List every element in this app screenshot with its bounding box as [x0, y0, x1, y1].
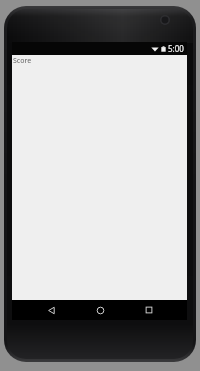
button[interactable]: Home [89, 300, 111, 320]
button[interactable]: Recent apps [138, 300, 160, 320]
staticText: 5:00 [168, 43, 184, 54]
button[interactable]: Back [40, 300, 62, 320]
staticText: Score [13, 56, 32, 66]
